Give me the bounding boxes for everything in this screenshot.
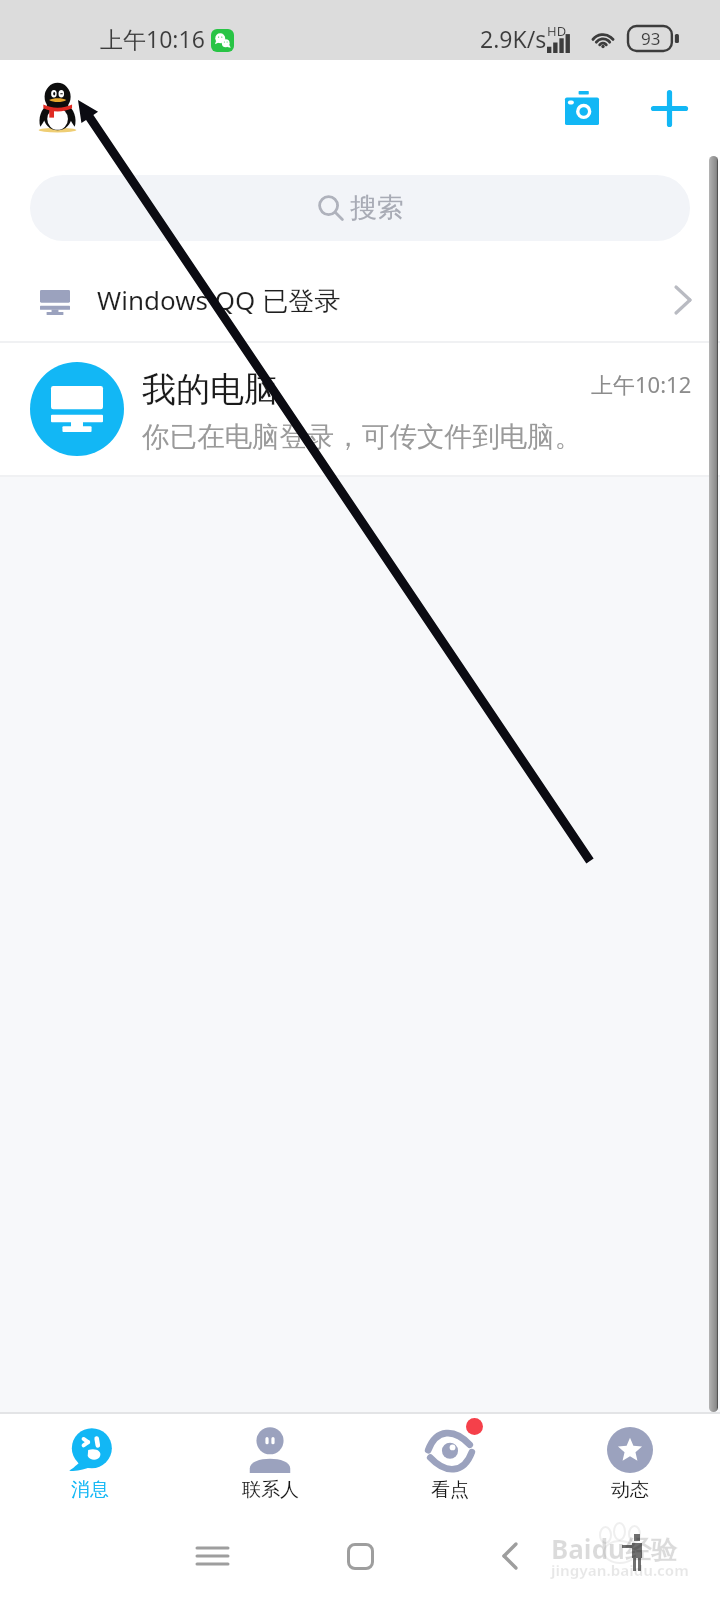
staticText: 动态 xyxy=(611,1478,649,1502)
button[interactable]: 消息 xyxy=(0,1414,180,1512)
button[interactable]: Back xyxy=(480,1526,540,1586)
button[interactable]: Camera xyxy=(551,77,613,139)
staticText: 上午10:12 xyxy=(591,369,692,399)
button[interactable]: Windows QQ 已登录 xyxy=(0,258,720,341)
staticText: 消息 xyxy=(71,1478,109,1502)
staticText: 搜索 xyxy=(350,191,404,225)
staticText: 看点 xyxy=(431,1478,469,1502)
button[interactable]: 我的电脑 xyxy=(0,343,720,475)
button[interactable]: Home xyxy=(330,1526,390,1586)
staticText: 93 xyxy=(641,27,661,50)
button[interactable]: 动态 xyxy=(540,1414,720,1512)
staticText: 你已在电脑登录，可传文件到电脑。 xyxy=(142,420,582,455)
staticText: 联系人 xyxy=(242,1478,299,1502)
staticText: HD xyxy=(547,22,567,40)
button[interactable]: 搜索 xyxy=(30,175,690,241)
button[interactable]: 联系人 xyxy=(180,1414,360,1512)
staticText: jingyan.baidu.com xyxy=(551,1560,689,1580)
staticText: 2.9K/s xyxy=(480,23,547,54)
button[interactable]: 看点 xyxy=(360,1414,540,1512)
button[interactable]: Recents xyxy=(182,1526,242,1586)
staticText: Baidu经验 xyxy=(551,1531,677,1567)
staticText: 我的电脑 xyxy=(142,368,278,411)
staticText: 上午10:16 xyxy=(100,23,205,54)
staticText: Windows QQ 已登录 xyxy=(97,282,341,318)
button[interactable]: Add xyxy=(638,77,700,139)
button[interactable]: Profile xyxy=(37,82,78,134)
